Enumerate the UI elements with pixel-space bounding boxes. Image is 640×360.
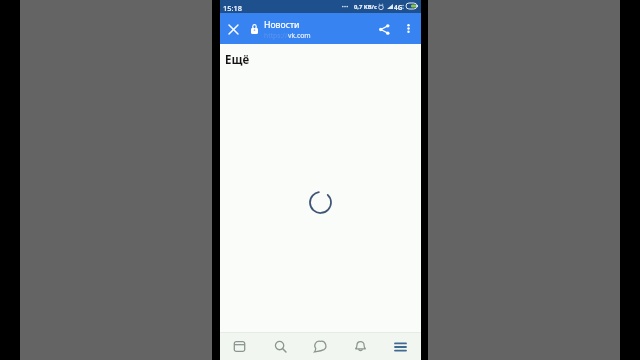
staticText: vk.com — [288, 31, 311, 40]
staticText: 0,7 KB/c — [354, 3, 377, 11]
staticText: 15:18 — [223, 3, 242, 13]
button[interactable]: Messages — [300, 333, 340, 360]
button[interactable]: More options — [398, 18, 418, 38]
staticText: https:// — [264, 31, 288, 40]
button[interactable]: Share — [373, 18, 395, 40]
button[interactable]: Close — [222, 18, 244, 40]
button[interactable]: Search — [260, 333, 300, 360]
staticText: 4G — [394, 3, 403, 12]
staticText: Ещё — [225, 52, 250, 68]
button[interactable]: Notifications — [340, 333, 380, 360]
button[interactable]: Menu — [380, 333, 420, 360]
button[interactable]: Newsfeed — [219, 333, 260, 360]
staticText: Новости — [264, 19, 300, 31]
